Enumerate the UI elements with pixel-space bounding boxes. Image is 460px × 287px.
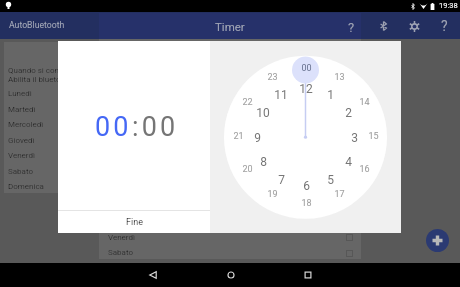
staticText: 00	[301, 63, 312, 74]
button[interactable]: Help	[431, 13, 453, 39]
staticText: 21	[233, 131, 244, 142]
staticText: Lunedì	[8, 89, 32, 98]
staticText: 2	[345, 106, 352, 120]
button[interactable]: Recents	[296, 263, 320, 287]
staticText: 14	[359, 97, 370, 108]
staticText: 22	[242, 97, 253, 108]
staticText: Sabato	[8, 167, 34, 176]
staticText: 18	[301, 198, 312, 209]
staticText: 6	[303, 179, 310, 193]
staticText: Timer	[215, 20, 245, 33]
staticText: Martedì	[8, 105, 36, 114]
staticText: Domenica	[8, 182, 44, 191]
staticText: Venerdì	[108, 233, 135, 242]
staticText: 4	[345, 155, 352, 169]
staticText: Mercoledì	[8, 120, 44, 129]
staticText: 00	[95, 111, 132, 143]
staticText: 16	[359, 164, 370, 175]
staticText: 17	[334, 189, 345, 200]
button[interactable]: Back	[141, 263, 165, 287]
button[interactable]: Toggle Sabato	[346, 250, 353, 257]
staticText: AutoBluetooth	[9, 20, 65, 30]
staticText: :00	[132, 111, 179, 143]
staticText: Venerdì	[8, 151, 35, 160]
button[interactable]: Home	[219, 263, 243, 287]
staticText: 19:38	[439, 1, 458, 10]
staticText: 12	[299, 82, 313, 96]
staticText: 5	[327, 173, 334, 187]
staticText: 20	[242, 164, 253, 175]
staticText: Fine	[126, 217, 143, 228]
staticText: 15	[368, 131, 379, 142]
staticText: Giovedì	[8, 136, 35, 145]
staticText: 19	[267, 189, 278, 200]
staticText: 7	[278, 173, 285, 187]
staticText: 1	[327, 88, 334, 102]
button[interactable]: Fine	[58, 211, 210, 233]
staticText: 3	[351, 131, 358, 145]
staticText: Sabato	[108, 248, 134, 257]
button[interactable]	[4, 42, 114, 193]
staticText: 8	[260, 155, 267, 169]
staticText: ?	[441, 18, 448, 34]
button[interactable]: Settings	[402, 13, 426, 39]
staticText: Quando si connette	[8, 66, 78, 75]
staticText: 9	[254, 131, 261, 145]
staticText: 11	[274, 88, 288, 102]
staticText: 23	[267, 72, 278, 83]
button[interactable]: Add	[426, 229, 449, 252]
staticText: 10	[256, 106, 270, 120]
staticText: Abilita il bluetooth	[8, 75, 73, 84]
button[interactable]: Help	[338, 13, 360, 39]
staticText: 13	[334, 72, 345, 83]
button[interactable]: Toggle Venerdì	[346, 234, 353, 241]
staticText: ?	[348, 20, 355, 35]
button[interactable]: Bluetooth	[371, 13, 395, 39]
